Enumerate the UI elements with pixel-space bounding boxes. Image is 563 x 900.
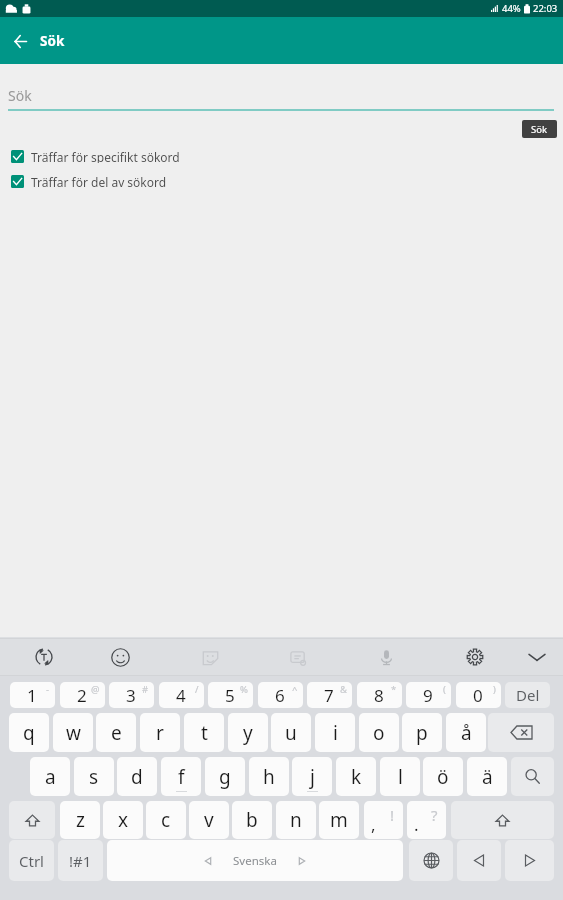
button[interactable]: Sök	[522, 120, 557, 138]
button[interactable]: o	[359, 713, 399, 752]
button[interactable]: s	[74, 757, 114, 796]
button[interactable]: k	[336, 757, 376, 796]
staticText: 22:03	[533, 2, 558, 15]
button[interactable]: 5	[208, 682, 253, 708]
button[interactable]: ö	[423, 757, 463, 796]
staticText: /	[195, 683, 199, 696]
button[interactable]: l	[380, 757, 420, 796]
staticText: 7	[324, 684, 334, 707]
button[interactable]: Shift	[9, 801, 55, 839]
button[interactable]: f	[161, 757, 201, 796]
button[interactable]: m	[319, 801, 359, 839]
button[interactable]: Ctrl	[9, 840, 54, 881]
staticText: 8	[374, 684, 384, 707]
staticText: g	[219, 764, 231, 790]
button[interactable]: 1	[10, 682, 55, 708]
staticText: r	[156, 720, 164, 746]
button[interactable]: i	[315, 713, 355, 752]
button[interactable]: Voice input	[367, 638, 405, 676]
button[interactable]: Change language	[409, 840, 453, 881]
button[interactable]: ,	[364, 801, 403, 839]
button[interactable]: x	[103, 801, 143, 839]
button[interactable]: w	[53, 713, 93, 752]
staticText: 9	[423, 684, 433, 707]
button[interactable]: Move cursor left	[457, 840, 501, 881]
button[interactable]: !#1	[58, 840, 103, 881]
button[interactable]: Backspace	[488, 713, 554, 752]
staticText: *	[391, 683, 397, 696]
staticText: w	[66, 720, 81, 746]
button[interactable]: h	[249, 757, 289, 796]
button[interactable]: Träffar för specifikt sökord	[0, 149, 180, 163]
button[interactable]: Back	[0, 21, 40, 61]
button[interactable]: v	[189, 801, 229, 839]
staticText: ?	[431, 805, 438, 825]
staticText: z	[76, 807, 85, 833]
button[interactable]: z	[60, 801, 100, 839]
staticText: Sök	[8, 86, 32, 105]
button[interactable]: Settings	[456, 638, 494, 676]
button[interactable]: GIF	[279, 638, 317, 676]
staticText: 0	[473, 684, 483, 707]
staticText: @	[91, 683, 100, 696]
staticText: v	[204, 807, 214, 833]
staticText: Träffar för specifikt sökord	[31, 149, 180, 163]
button[interactable]: Shift	[451, 801, 554, 839]
button[interactable]: b	[232, 801, 272, 839]
staticText: 2	[77, 684, 87, 707]
button[interactable]: Del	[505, 682, 550, 708]
staticText: h	[263, 764, 275, 790]
button[interactable]: 7	[307, 682, 352, 708]
button[interactable]: 0	[456, 682, 501, 708]
staticText: Sök	[40, 32, 65, 50]
button[interactable]: Search	[511, 757, 554, 796]
staticText: q	[23, 720, 35, 746]
button[interactable]: 9	[406, 682, 451, 708]
button[interactable]: p	[402, 713, 442, 752]
button[interactable]: 2	[60, 682, 105, 708]
button[interactable]: 3	[109, 682, 154, 708]
button[interactable]: Space	[107, 840, 403, 881]
staticText: 1	[27, 684, 37, 707]
button[interactable]: 8	[357, 682, 402, 708]
staticText: b	[246, 807, 258, 833]
button[interactable]: Emoji	[101, 638, 139, 676]
staticText: s	[89, 764, 99, 790]
button[interactable]: r	[140, 713, 180, 752]
button[interactable]: n	[276, 801, 316, 839]
button[interactable]: å	[446, 713, 486, 752]
button[interactable]: g	[205, 757, 245, 796]
staticText: ,	[371, 813, 376, 836]
button[interactable]: .	[407, 801, 446, 839]
staticText: x	[118, 807, 129, 833]
staticText: m	[330, 807, 348, 833]
button[interactable]: c	[146, 801, 186, 839]
staticText: 44%	[502, 2, 521, 15]
staticText: t	[201, 720, 208, 746]
staticText: o	[373, 720, 385, 746]
staticText: p	[416, 720, 428, 746]
staticText: u	[285, 720, 297, 746]
button[interactable]: e	[96, 713, 136, 752]
button[interactable]: y	[228, 713, 268, 752]
button[interactable]: 6	[258, 682, 303, 708]
button[interactable]: q	[9, 713, 49, 752]
button[interactable]: j	[292, 757, 332, 796]
button[interactable]: d	[117, 757, 157, 796]
button[interactable]: 4	[159, 682, 204, 708]
staticText: %	[240, 683, 248, 696]
button[interactable]: Stickers	[191, 638, 229, 676]
button[interactable]: Move cursor right	[505, 840, 554, 881]
staticText: (	[443, 683, 446, 696]
button[interactable]: ä	[467, 757, 507, 796]
button[interactable]: Translate	[25, 638, 63, 676]
staticText: Svenska	[233, 853, 277, 869]
staticText: #	[142, 683, 149, 696]
button[interactable]: a	[30, 757, 70, 796]
button[interactable]: Träffar för del av sökord	[0, 174, 167, 188]
button[interactable]: t	[184, 713, 224, 752]
button[interactable]: Hide keyboard	[518, 638, 556, 676]
staticText: a	[45, 764, 56, 790]
staticText: Träffar för del av sökord	[31, 174, 167, 188]
button[interactable]: u	[271, 713, 311, 752]
